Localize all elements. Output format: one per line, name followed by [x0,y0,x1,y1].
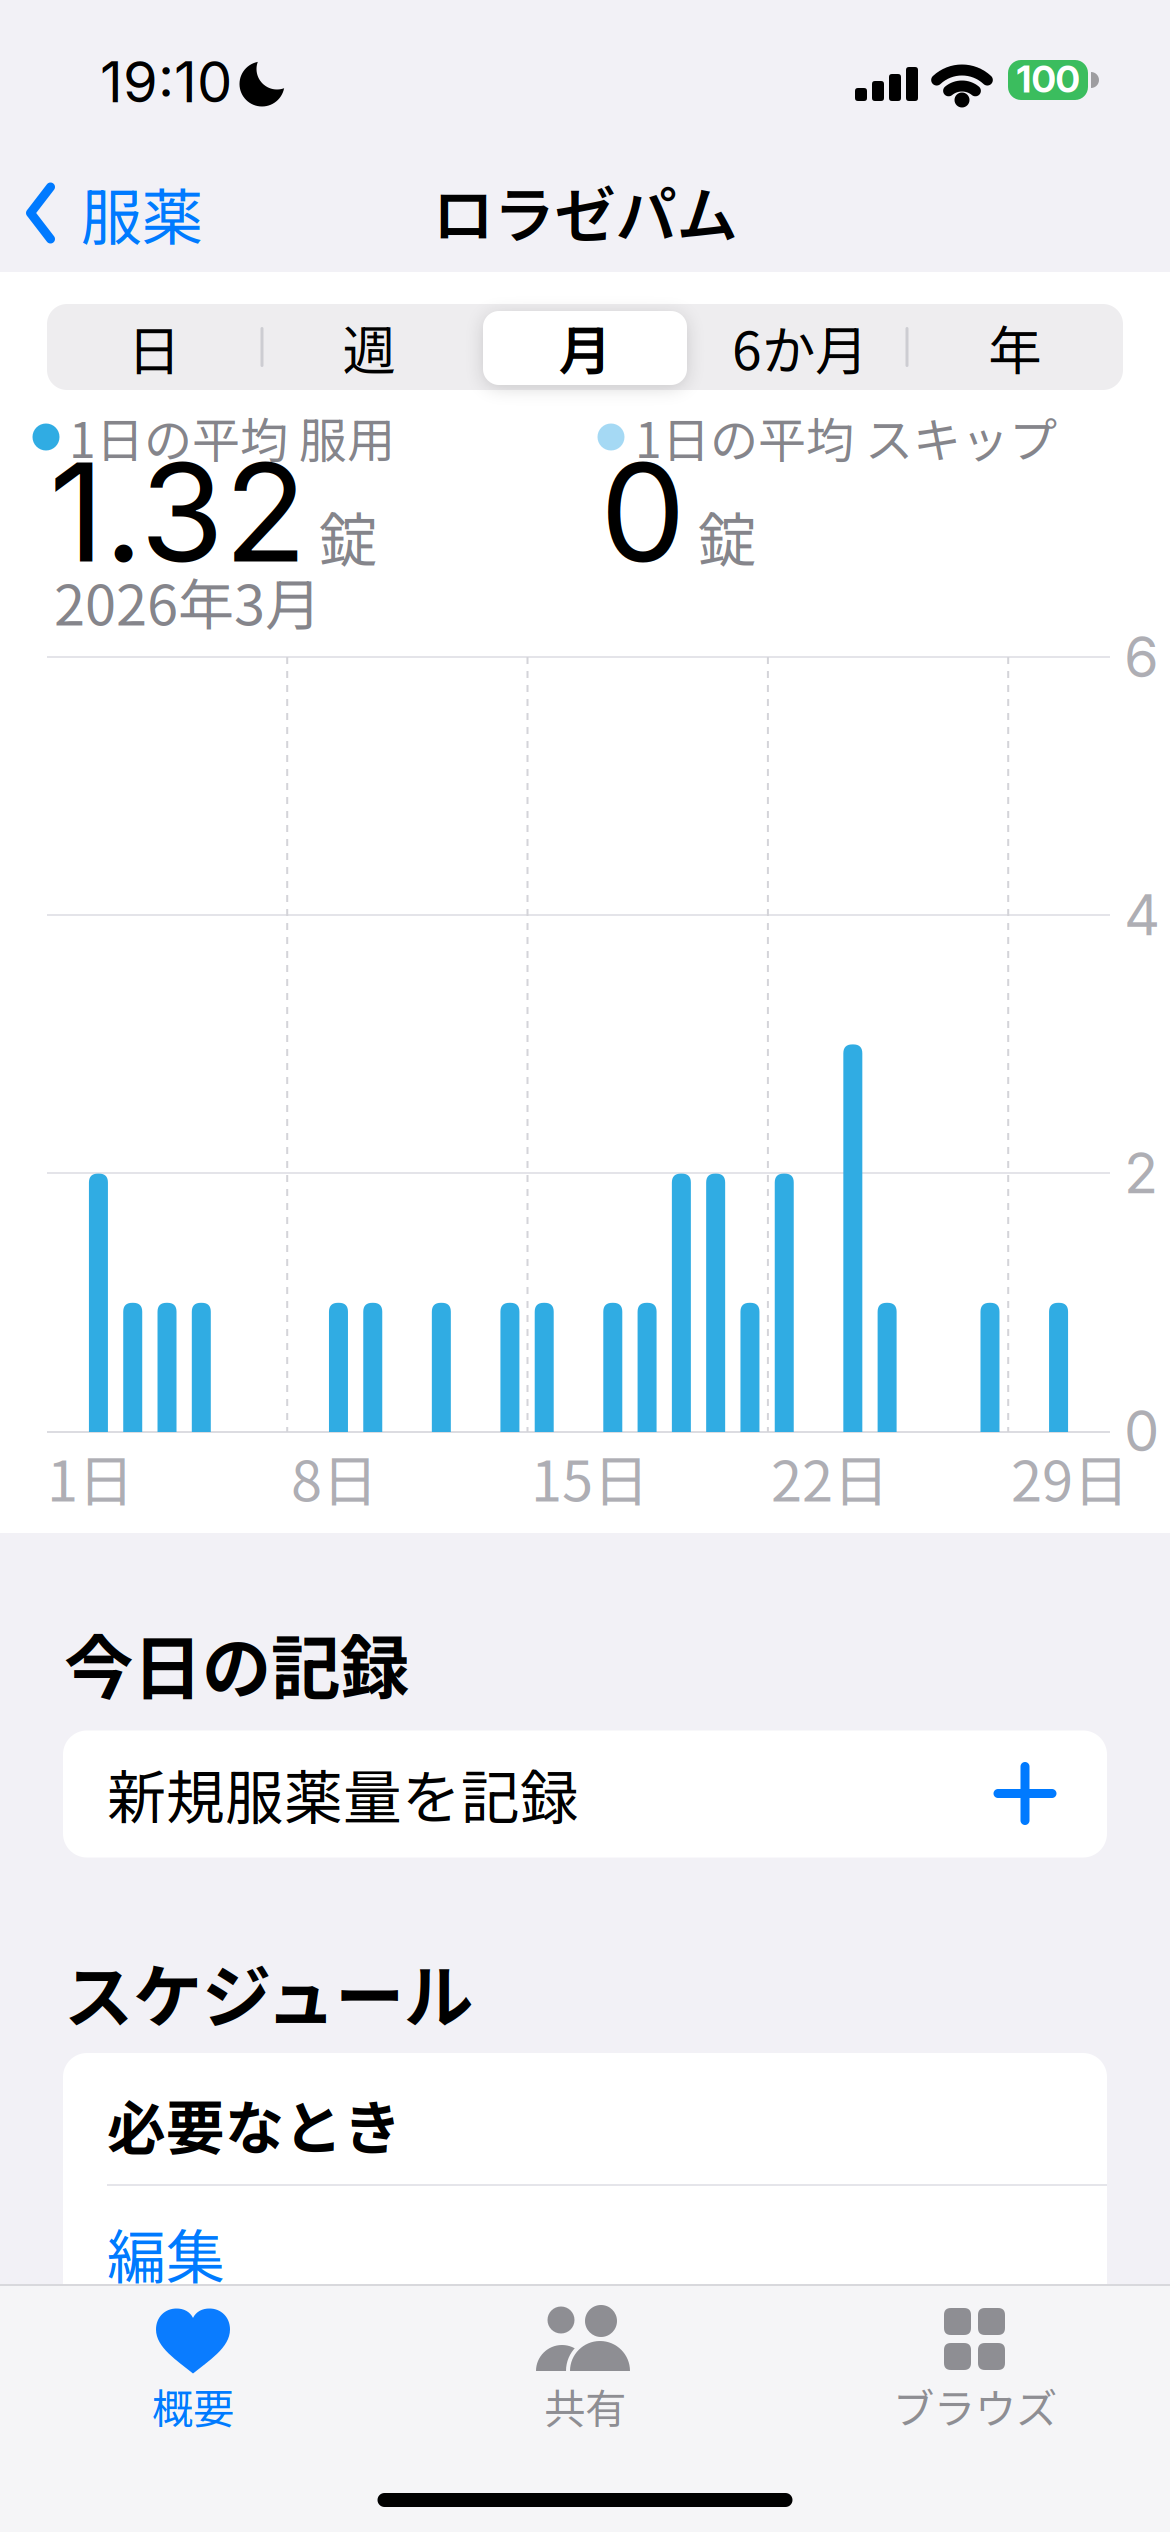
staticText: 2 [1124,1139,1158,1207]
staticText: 6 [1124,623,1159,691]
staticText: 概要 [152,2376,234,2436]
staticText: 15日 [531,1436,649,1518]
staticText: 100 [1016,56,1079,102]
staticText: 必要なとき [107,2081,402,2166]
button[interactable]: 新規服薬量を記録 [63,1730,1107,1857]
staticText: 1日 [47,1436,134,1518]
button[interactable]: 共有 [445,2285,725,2465]
staticText: ロラゼパム [432,167,737,255]
staticText: 1.32 [49,430,307,594]
staticText: 29日 [1011,1436,1129,1518]
staticText: 年 [988,308,1041,386]
button[interactable]: 週 [279,307,459,387]
button[interactable]: 日 [64,307,244,387]
staticText: 22日 [771,1436,889,1518]
staticText: 服薬 [80,169,202,257]
staticText: 新規服薬量を記録 [107,1751,579,1836]
button[interactable]: ブラウズ [835,2285,1115,2465]
staticText: 共有 [544,2376,626,2436]
button[interactable]: 服薬 [25,169,202,257]
staticText: 錠 [698,493,757,578]
staticText: 6か月 [732,308,868,386]
staticText: 1日の平均 スキップ [635,402,1057,472]
button[interactable]: 6か月 [700,307,900,387]
staticText: 2026年3月 [54,560,321,642]
staticText: 日 [127,308,180,386]
staticText: ブラウズ [893,2376,1057,2436]
staticText: 錠 [319,493,378,578]
staticText: 今日の記録 [64,1613,409,1713]
button[interactable]: 概要 [53,2285,333,2465]
staticText: 19:10 [100,48,232,116]
button[interactable]: 編集 [107,2210,225,2295]
button[interactable]: 年 [925,307,1105,387]
staticText: 4 [1124,881,1160,949]
staticText: 0 [1124,1397,1159,1465]
staticText: 編集 [107,2210,225,2295]
staticText: スケジュール [64,1942,473,2042]
staticText: 1日の平均 服用 [69,402,395,472]
staticText: 8日 [291,1436,378,1518]
staticText: 週 [342,308,395,386]
staticText: 0 [600,430,686,594]
button[interactable]: 月 [485,307,685,387]
staticText: 月 [558,308,611,386]
